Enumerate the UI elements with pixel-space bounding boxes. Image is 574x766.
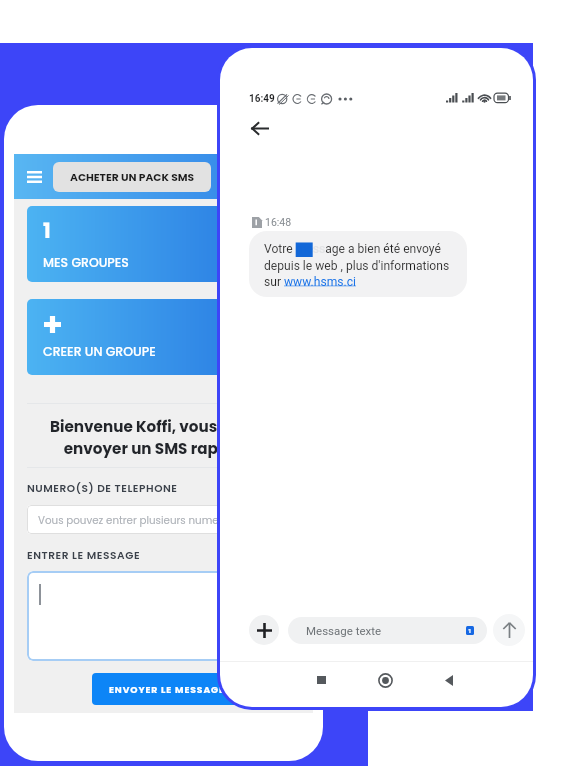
staticText: 1: [43, 217, 51, 245]
button[interactable]: Message texte: [306, 617, 474, 644]
button[interactable]: Back: [434, 665, 464, 695]
button[interactable]: CREER UN GROUPE: [43, 299, 300, 375]
staticText: Vous pouvez entrer plusieurs numeros: [38, 513, 235, 527]
button[interactable]: Recent apps: [306, 665, 336, 695]
button[interactable]: Vous pouvez entrer plusieurs numeros: [38, 505, 289, 534]
button[interactable]: Menu: [21, 164, 47, 190]
button[interactable]: Send: [493, 614, 525, 646]
staticText: 16:48: [265, 216, 292, 228]
button[interactable]: Votre message a bien été envoyé depuis l…: [264, 242, 450, 288]
staticText: ENTRER LE MESSAGE: [27, 548, 141, 563]
staticText: ACHETER UN PACK SMS: [70, 170, 195, 185]
button[interactable]: Add attachment: [249, 615, 279, 645]
staticText: Message texte: [306, 624, 382, 637]
button[interactable]: ENVOYER LE MESSAGE: [109, 673, 225, 705]
button[interactable]: [27, 571, 300, 661]
staticText: CREER UN GROUPE: [43, 343, 156, 360]
staticText: Votre message a bien été envoyé depuis l…: [264, 242, 450, 288]
button[interactable]: Home: [370, 665, 400, 695]
staticText: MES GROUPES: [43, 254, 129, 271]
staticText: NUMERO(S) DE TELEPHONE: [27, 481, 178, 496]
button[interactable]: Back: [241, 114, 277, 142]
staticText: Bienvenue Koffi, vous pouvez envoyer un …: [27, 416, 300, 459]
staticText: 1: [468, 627, 472, 634]
button[interactable]: ACHETER UN PACK SMS: [53, 162, 211, 192]
button[interactable]: 1: [43, 206, 300, 282]
staticText: 16:49: [249, 93, 275, 105]
staticText: ENVOYER LE MESSAGE: [109, 683, 225, 696]
